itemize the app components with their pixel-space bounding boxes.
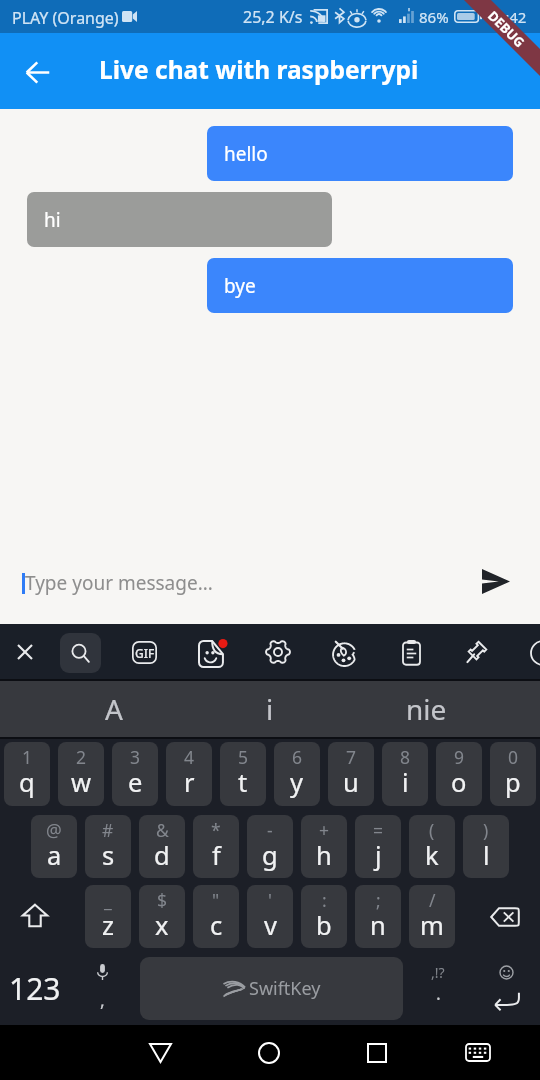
staticText: z	[102, 908, 114, 943]
button[interactable]: 8	[382, 742, 428, 806]
button[interactable]: 123	[0, 957, 70, 1020]
staticText: Type your message...	[25, 570, 213, 596]
button[interactable]: 0	[490, 742, 536, 806]
button[interactable]: Theme	[332, 639, 359, 666]
button[interactable]: /	[409, 885, 455, 948]
staticText: p	[505, 765, 521, 800]
button[interactable]: i	[192, 681, 348, 737]
staticText: c	[210, 908, 223, 943]
button[interactable]: Enter	[478, 957, 534, 1020]
staticText: f	[212, 838, 221, 873]
staticText: Live chat with raspberrypi	[99, 53, 419, 86]
staticText: g	[262, 838, 278, 873]
staticText: +	[319, 818, 330, 842]
staticText: q	[19, 765, 35, 800]
staticText: "	[212, 888, 220, 912]
button[interactable]: &	[139, 815, 185, 878]
button[interactable]: Clipboard	[402, 640, 421, 665]
button[interactable]: nie	[348, 681, 504, 737]
staticText: '	[268, 888, 272, 912]
staticText: 4	[184, 745, 195, 769]
staticText: b	[316, 908, 332, 943]
button[interactable]: 9	[436, 742, 482, 806]
staticText: j	[375, 838, 382, 873]
button[interactable]: bye	[207, 258, 513, 313]
button[interactable]: @	[31, 815, 77, 878]
staticText: ,!?	[431, 963, 445, 982]
button[interactable]: Back	[122, 1025, 198, 1080]
button[interactable]: :	[301, 885, 347, 948]
button[interactable]: +	[301, 815, 347, 878]
button[interactable]: '	[247, 885, 293, 948]
button[interactable]: $	[139, 885, 185, 948]
button[interactable]: 5	[220, 742, 266, 806]
staticText: PLAY (Orange)	[12, 7, 119, 29]
button[interactable]: GIF	[132, 641, 157, 664]
button[interactable]: Voice input	[78, 957, 126, 1020]
staticText: /	[429, 888, 436, 912]
button[interactable]: Pin	[465, 640, 489, 664]
button[interactable]: Home	[241, 1025, 297, 1080]
staticText: k	[425, 838, 439, 873]
staticText: w	[71, 765, 92, 800]
staticText: u	[343, 765, 359, 800]
button[interactable]: =	[355, 815, 401, 878]
button[interactable]: 6	[274, 742, 320, 806]
button[interactable]: Back	[14, 48, 62, 96]
staticText: n	[370, 908, 386, 943]
staticText: r	[184, 765, 195, 800]
staticText: GIF	[135, 645, 155, 661]
staticText: x	[155, 908, 169, 943]
staticText: h	[316, 838, 332, 873]
button[interactable]: Search	[60, 633, 101, 673]
staticText: 1	[22, 745, 33, 769]
button[interactable]: -	[247, 815, 293, 878]
button[interactable]: #	[85, 815, 131, 878]
staticText: &	[156, 818, 169, 842]
button[interactable]: Close	[5, 632, 45, 672]
staticText: v	[264, 908, 277, 943]
button[interactable]: Settings	[265, 639, 291, 665]
button[interactable]: ;	[355, 885, 401, 948]
staticText: -	[267, 818, 273, 842]
button[interactable]: SwiftKey	[140, 957, 403, 1020]
staticText: i	[402, 765, 409, 800]
button[interactable]: _	[85, 885, 131, 948]
staticText: @	[46, 818, 62, 842]
button[interactable]: ,!?	[412, 957, 464, 1020]
button[interactable]: 1	[4, 742, 50, 806]
button[interactable]: (	[409, 815, 455, 878]
button[interactable]: 4	[166, 742, 212, 806]
button[interactable]: Send	[474, 559, 518, 603]
staticText: 3	[130, 745, 141, 769]
staticText: 123	[9, 968, 61, 1009]
button[interactable]: 7	[328, 742, 374, 806]
staticText: d	[154, 838, 170, 873]
button[interactable]: "	[193, 885, 239, 948]
staticText: l	[483, 838, 490, 873]
button[interactable]: A	[36, 681, 192, 737]
button[interactable]: hello	[207, 126, 513, 181]
button[interactable]: Stickers	[199, 641, 227, 667]
staticText: 6	[292, 745, 303, 769]
button[interactable]: )	[463, 815, 509, 878]
button[interactable]: 3	[112, 742, 158, 806]
staticText: 8	[400, 745, 411, 769]
staticText: m	[420, 908, 444, 943]
staticText: SwiftKey	[249, 976, 321, 1001]
staticText: 0	[508, 745, 519, 769]
button[interactable]: 2	[58, 742, 104, 806]
button[interactable]: Backspace	[470, 885, 540, 948]
button[interactable]: Recents	[349, 1025, 405, 1080]
staticText: 7	[346, 745, 357, 769]
staticText: 2	[76, 745, 87, 769]
button[interactable]: *	[193, 815, 239, 878]
staticText: y	[290, 765, 304, 800]
button[interactable]: hi	[27, 192, 332, 247]
button[interactable]: Hide keyboard	[450, 1025, 506, 1080]
staticText: _	[104, 888, 112, 912]
staticText: s	[102, 838, 115, 873]
button[interactable]: Shift	[0, 885, 70, 948]
staticText: )	[483, 818, 489, 842]
staticText: e	[128, 765, 143, 800]
